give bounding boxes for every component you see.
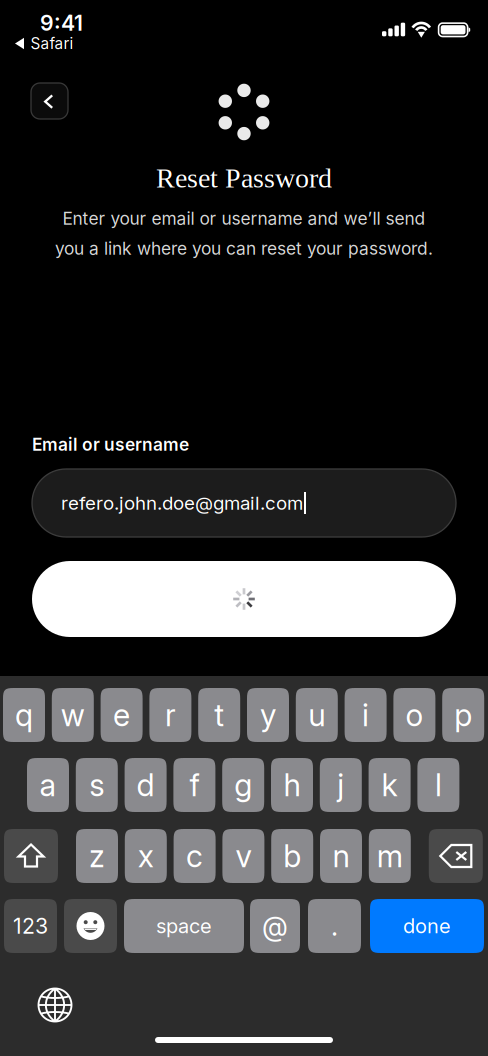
staticText: j — [337, 766, 344, 803]
button[interactable]: x — [125, 829, 167, 883]
button[interactable]: o — [393, 688, 435, 742]
button[interactable]: Safari — [13, 34, 73, 53]
staticText: k — [382, 766, 398, 803]
button[interactable]: Back — [31, 83, 68, 119]
staticText: x — [138, 837, 154, 874]
staticText: space — [156, 914, 212, 938]
button[interactable]: s — [76, 758, 118, 812]
button[interactable]: g — [222, 758, 264, 812]
button[interactable]: v — [222, 829, 264, 883]
staticText: c — [186, 837, 203, 874]
button[interactable]: refero.john.doe@gmail.com — [32, 469, 456, 537]
staticText: i — [362, 696, 369, 733]
button[interactable]: . — [308, 899, 361, 953]
button[interactable]: a — [27, 758, 69, 812]
button[interactable]: c — [174, 829, 216, 883]
staticText: g — [234, 766, 252, 803]
staticText: @ — [262, 910, 288, 942]
button[interactable]: d — [125, 758, 167, 812]
button[interactable]: 123 — [4, 899, 57, 953]
button[interactable]: done — [370, 899, 484, 953]
staticText: q — [15, 696, 33, 733]
button[interactable]: j — [320, 758, 362, 812]
button[interactable]: q — [3, 688, 45, 742]
staticText: h — [283, 766, 300, 803]
staticText: l — [435, 766, 442, 803]
staticText: Email or username — [32, 434, 189, 455]
staticText: 9:41 — [40, 10, 83, 36]
staticText: n — [332, 837, 349, 874]
button[interactable]: f — [173, 758, 215, 812]
button[interactable]: r — [149, 688, 191, 742]
staticText: 123 — [13, 913, 48, 939]
staticText: done — [403, 914, 451, 938]
button[interactable]: h — [271, 758, 313, 812]
button[interactable]: Next keyboard — [33, 983, 77, 1027]
button[interactable]: u — [296, 688, 338, 742]
staticText: s — [89, 766, 104, 803]
button[interactable]: @ — [250, 899, 300, 953]
staticText: o — [405, 696, 423, 733]
staticText: w — [61, 696, 85, 733]
button[interactable]: p — [442, 688, 484, 742]
button[interactable]: n — [320, 829, 362, 883]
button[interactable]: b — [271, 829, 313, 883]
staticText: y — [260, 696, 276, 733]
button[interactable]: e — [101, 688, 143, 742]
staticText: u — [308, 696, 325, 733]
staticText: . — [331, 910, 338, 942]
staticText: d — [137, 766, 155, 803]
staticText: Enter your email or username and we’ll s… — [62, 208, 425, 229]
button[interactable]: space — [124, 899, 244, 953]
staticText: Reset Password — [156, 162, 332, 193]
staticText: Safari — [30, 34, 73, 53]
staticText: m — [377, 837, 403, 874]
staticText: t — [214, 696, 224, 733]
button[interactable]: k — [369, 758, 411, 812]
button[interactable]: Emoji — [64, 899, 117, 953]
button[interactable]: m — [369, 829, 411, 883]
staticText: b — [283, 837, 301, 874]
button[interactable]: w — [52, 688, 94, 742]
staticText: refero.john.doe@gmail.com — [61, 492, 303, 514]
staticText: z — [89, 837, 105, 874]
button[interactable]: l — [417, 758, 459, 812]
button[interactable]: Send reset link — [32, 561, 456, 637]
button[interactable]: y — [247, 688, 289, 742]
button[interactable]: i — [345, 688, 387, 742]
staticText: e — [113, 696, 130, 733]
staticText: v — [235, 837, 251, 874]
button[interactable]: Shift — [4, 829, 58, 883]
staticText: p — [454, 696, 472, 733]
staticText: r — [165, 696, 176, 733]
button[interactable]: z — [76, 829, 118, 883]
button[interactable]: Delete — [429, 829, 483, 883]
staticText: f — [189, 766, 199, 803]
staticText: a — [39, 766, 56, 803]
staticText: you a link where you can reset your pass… — [55, 238, 433, 259]
button[interactable]: t — [198, 688, 240, 742]
